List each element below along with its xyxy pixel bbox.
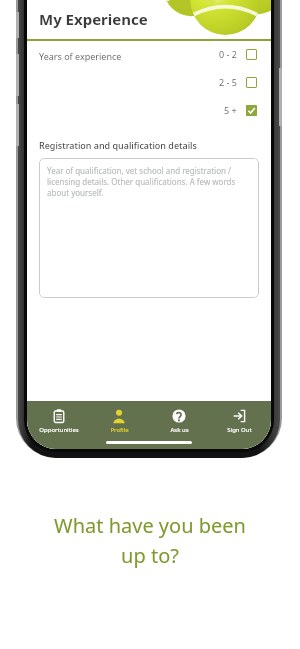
button[interactable]: 0 - 2	[217, 47, 259, 61]
staticText: What have you been	[54, 512, 246, 539]
staticText: Opportunities	[39, 426, 79, 434]
button[interactable]: 5 +	[222, 103, 259, 117]
staticText: My Experience	[39, 9, 148, 29]
button[interactable]: Year of qualification, vet school and re…	[39, 158, 259, 298]
staticText: 5 +	[224, 104, 237, 116]
staticText: Sign Out	[227, 426, 252, 434]
staticText: up to?	[121, 542, 179, 569]
button[interactable]: Ask us	[151, 407, 207, 436]
button[interactable]: Sign Out	[211, 407, 267, 436]
staticText: 2 - 5	[219, 76, 237, 88]
button[interactable]: Opportunities	[31, 407, 87, 436]
staticText: Registration and qualification details	[39, 139, 197, 151]
staticText: Profile	[110, 426, 129, 434]
staticText: Ask us	[170, 426, 189, 434]
button[interactable]: 2 - 5	[217, 75, 259, 89]
staticText: Year of qualification, vet school and re…	[47, 165, 236, 198]
staticText: Years of experience	[39, 50, 122, 62]
button[interactable]: Profile	[91, 407, 147, 436]
staticText: 0 - 2	[219, 48, 237, 60]
